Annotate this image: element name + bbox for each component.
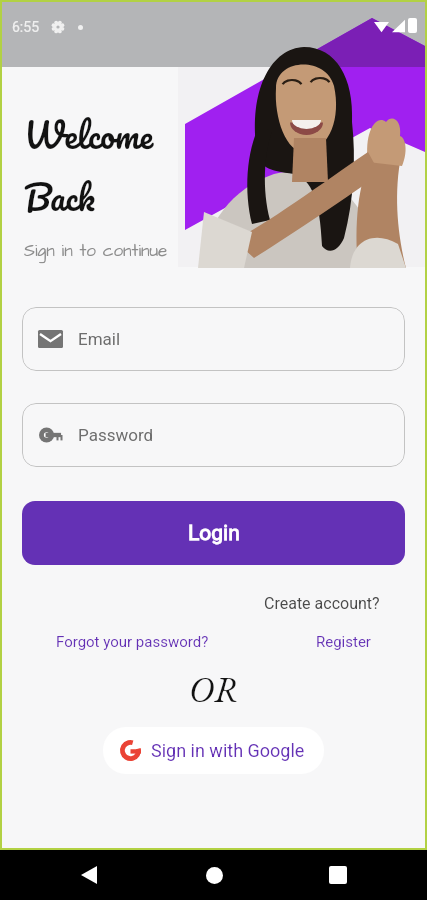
button[interactable]: Email	[22, 307, 405, 371]
button[interactable]: Sign in with Google	[103, 727, 324, 774]
button[interactable]: Register	[316, 633, 371, 651]
staticText: Password	[78, 425, 154, 445]
staticText: Sign in with Google	[151, 740, 305, 761]
button[interactable]: Home	[188, 850, 240, 900]
staticText: Create account?	[264, 594, 380, 613]
button[interactable]: Back	[63, 850, 115, 900]
staticText: Login	[188, 521, 240, 546]
button[interactable]: Login	[22, 501, 405, 565]
button[interactable]: Recent apps	[312, 850, 364, 900]
staticText: 6:55	[12, 19, 39, 35]
staticText: Back	[24, 168, 95, 226]
button[interactable]: Forgot your password?	[56, 633, 209, 651]
staticText: Welcome	[24, 106, 154, 164]
button[interactable]: Password	[22, 403, 405, 467]
button[interactable]: Create account?	[2, 594, 425, 613]
staticText: Email	[78, 329, 121, 349]
staticText: Sign in to continue	[24, 239, 168, 263]
staticText: OR	[2, 666, 425, 713]
